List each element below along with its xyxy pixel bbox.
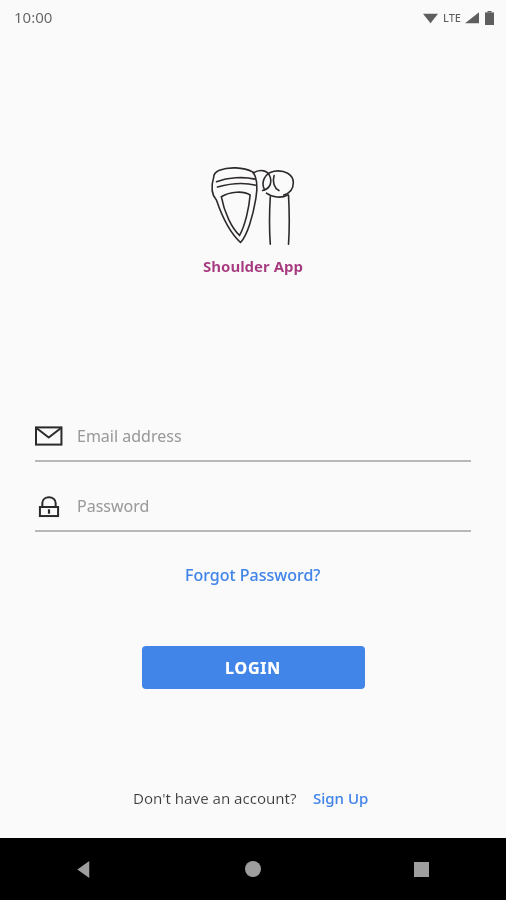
button[interactable]: Recent apps (337, 838, 506, 900)
button[interactable]: Email (35, 424, 471, 462)
staticText: Sign Up (313, 788, 369, 808)
other: Email (35, 424, 63, 448)
other: Password (35, 494, 63, 518)
staticText: 10:00 (14, 7, 53, 27)
button[interactable]: Home (168, 838, 337, 900)
button[interactable]: Forgot Password? (177, 560, 329, 590)
button[interactable]: Password (35, 494, 471, 532)
staticText: Password (77, 495, 150, 517)
button[interactable]: Sign Up (309, 786, 373, 810)
button[interactable]: LOGIN (142, 646, 365, 689)
staticText: LTE (443, 10, 461, 25)
staticText: Don't have an account? (133, 788, 297, 808)
staticText: LOGIN (225, 657, 282, 679)
button[interactable]: Back (0, 838, 168, 900)
staticText: Email address (77, 425, 182, 447)
staticText: Shoulder App (203, 256, 303, 276)
staticText: Forgot Password? (185, 564, 321, 586)
